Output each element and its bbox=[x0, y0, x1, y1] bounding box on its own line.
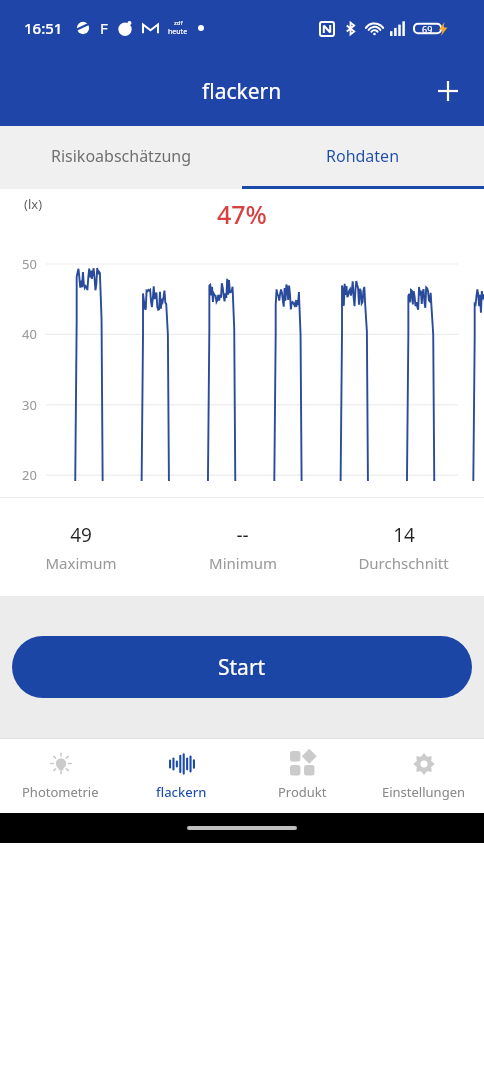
staticText: 16 bbox=[306, 623, 321, 641]
button[interactable]: Risikoabschätzung bbox=[0, 126, 242, 186]
staticText: 47% bbox=[217, 197, 267, 231]
button[interactable]: Einstellungen bbox=[363, 739, 484, 813]
staticText: 30 bbox=[22, 396, 37, 414]
staticText: heute bbox=[168, 27, 188, 37]
staticText: F bbox=[100, 18, 108, 38]
staticText: -- bbox=[236, 522, 249, 548]
staticText: 12 bbox=[240, 623, 255, 641]
staticText: Produkt bbox=[278, 783, 327, 801]
staticText: Rohdaten bbox=[326, 145, 400, 167]
staticText: Start bbox=[218, 653, 266, 682]
staticText: 69 bbox=[422, 23, 433, 35]
staticText: Maximum bbox=[45, 553, 117, 573]
staticText: 49 bbox=[70, 522, 92, 548]
staticText: flackern bbox=[202, 77, 282, 106]
staticText: 4 bbox=[107, 623, 115, 641]
button[interactable]: Start bbox=[12, 636, 472, 698]
staticText: (lx) bbox=[24, 195, 43, 213]
staticText: 20 bbox=[373, 623, 388, 641]
staticText: 0 bbox=[41, 623, 49, 641]
button[interactable]: 49 bbox=[0, 498, 162, 596]
button[interactable]: Photometrie bbox=[0, 739, 121, 813]
staticText: 24 bbox=[439, 623, 454, 641]
button[interactable]: Rohdaten bbox=[242, 126, 484, 186]
button[interactable]: Add bbox=[426, 69, 470, 113]
staticText: Durchschnitt bbox=[358, 553, 449, 573]
staticText: Einstellungen bbox=[382, 783, 466, 801]
button[interactable]: -- bbox=[162, 498, 323, 596]
staticText: Photometrie bbox=[22, 783, 99, 801]
button[interactable]: flackern bbox=[121, 739, 242, 813]
staticText: Risikoabschätzung bbox=[51, 145, 192, 167]
button[interactable]: 14 bbox=[323, 498, 484, 596]
staticText: zdf bbox=[174, 19, 183, 27]
staticText: 14 bbox=[393, 522, 415, 548]
staticText: 16:51 bbox=[24, 18, 63, 38]
button[interactable]: Produkt bbox=[242, 739, 363, 813]
staticText: 40 bbox=[22, 325, 37, 343]
staticText: 50 bbox=[22, 255, 37, 273]
staticText: flackern bbox=[156, 783, 207, 801]
staticText: Minimum bbox=[209, 553, 277, 573]
staticText: 8 bbox=[174, 623, 182, 641]
staticText: 20 bbox=[22, 466, 37, 484]
